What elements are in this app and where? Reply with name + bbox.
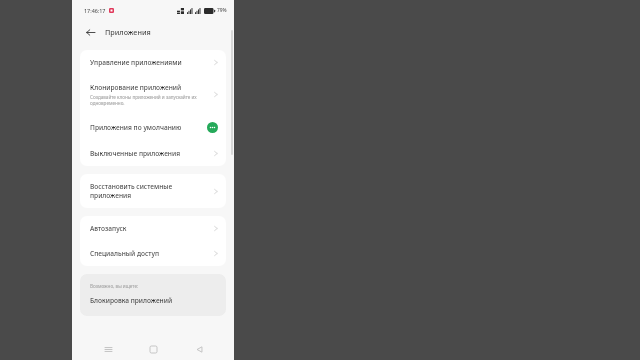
staticText: 79%: [217, 7, 227, 14]
staticText: Автозапуск: [90, 224, 127, 233]
staticText: Возможно, вы ищете:: [90, 283, 139, 289]
button[interactable]: Автозапуск: [80, 216, 226, 241]
button[interactable]: Назад: [189, 339, 209, 359]
staticText: Создавайте клоны приложений и запускайте…: [90, 94, 210, 106]
staticText: 17:46:17: [84, 7, 106, 14]
staticText: Управление приложениями: [90, 58, 182, 67]
staticText: Приложения по умолчанию: [90, 123, 182, 132]
button[interactable]: Возможно, вы ищете:: [80, 274, 226, 316]
staticText: Приложения: [105, 27, 151, 37]
staticText: Восстановить системные приложения: [90, 182, 210, 200]
button[interactable]: Восстановить системные приложения: [80, 174, 226, 208]
staticText: Выключенные приложения: [90, 149, 181, 158]
button[interactable]: Специальный доступ: [80, 241, 226, 266]
button[interactable]: Выключенные приложения: [80, 141, 226, 166]
button[interactable]: Клонирование приложений: [80, 75, 226, 114]
staticText: Блокировка приложений: [90, 296, 173, 305]
staticText: Клонирование приложений: [90, 83, 182, 92]
button[interactable]: Главный экран: [143, 339, 163, 359]
button[interactable]: Назад: [82, 24, 98, 40]
button[interactable]: Управление приложениями: [80, 50, 226, 75]
button[interactable]: Последние приложения: [98, 339, 118, 359]
button[interactable]: Приложения по умолчанию: [80, 114, 226, 141]
staticText: Специальный доступ: [90, 249, 159, 258]
